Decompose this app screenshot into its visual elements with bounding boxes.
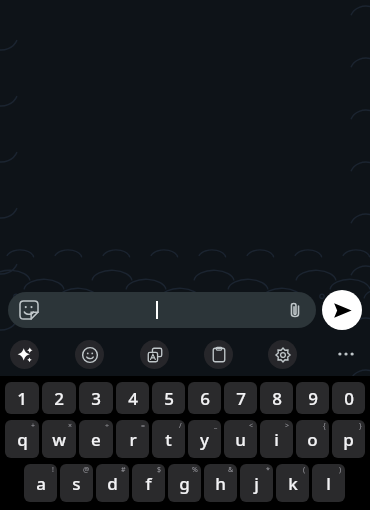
button[interactable]: d	[96, 464, 129, 502]
staticText: )	[339, 465, 342, 475]
button[interactable]: 9	[296, 382, 329, 414]
button[interactable]: 0	[332, 382, 365, 414]
staticText: 3	[91, 387, 101, 410]
staticText: e	[91, 428, 101, 451]
staticText: p	[343, 428, 354, 451]
button[interactable]: y	[188, 420, 221, 458]
staticText: g	[179, 472, 190, 495]
button[interactable]: 1	[5, 382, 39, 414]
staticText: f	[145, 472, 152, 495]
staticText: *	[266, 465, 270, 475]
button[interactable]: Stickers	[8, 292, 316, 328]
button[interactable]: More options	[332, 340, 360, 368]
staticText: o	[307, 428, 318, 451]
staticText: t	[165, 428, 172, 451]
staticText: (	[303, 465, 306, 475]
button[interactable]: Emoji	[75, 340, 104, 369]
button[interactable]: o	[296, 420, 329, 458]
button[interactable]: t	[152, 420, 185, 458]
button[interactable]: Send	[322, 290, 362, 330]
button[interactable]: j	[240, 464, 273, 502]
button[interactable]: 4	[116, 382, 149, 414]
staticText: 1	[17, 387, 27, 410]
button[interactable]: Settings	[268, 340, 297, 369]
staticText: q	[17, 428, 28, 451]
staticText: _	[214, 421, 218, 431]
button[interactable]: Translate	[140, 340, 169, 369]
button[interactable]: a	[24, 464, 57, 502]
staticText: 6	[200, 387, 210, 410]
staticText: }	[359, 421, 362, 431]
staticText: +	[31, 421, 36, 431]
staticText: k	[288, 472, 298, 495]
staticText: i	[274, 428, 279, 451]
button[interactable]: i	[260, 420, 293, 458]
button[interactable]: k	[276, 464, 309, 502]
staticText: h	[215, 472, 226, 495]
staticText: y	[200, 428, 209, 451]
staticText: =	[141, 421, 146, 431]
staticText: ×	[68, 421, 73, 431]
staticText: $	[157, 465, 162, 475]
staticText: r	[129, 428, 137, 451]
staticText: ÷	[105, 421, 110, 431]
staticText: <	[249, 421, 254, 431]
button[interactable]: s	[60, 464, 93, 502]
staticText: s	[72, 472, 81, 495]
button[interactable]: Attach	[283, 298, 307, 322]
button[interactable]: r	[116, 420, 149, 458]
staticText: &	[228, 465, 234, 475]
button[interactable]: w	[42, 420, 76, 458]
button[interactable]: 2	[42, 382, 76, 414]
button[interactable]: 7	[224, 382, 257, 414]
button[interactable]: e	[79, 420, 113, 458]
staticText: 4	[128, 387, 138, 410]
staticText: 7	[236, 387, 246, 410]
staticText: >	[285, 421, 290, 431]
button[interactable]: AI suggestions	[10, 340, 39, 369]
button[interactable]: f	[132, 464, 165, 502]
staticText: l	[326, 472, 331, 495]
button[interactable]: q	[5, 420, 39, 458]
staticText: @	[83, 465, 90, 475]
staticText: a	[36, 472, 46, 495]
staticText: /	[179, 421, 182, 431]
staticText: 5	[164, 387, 174, 410]
staticText: 2	[54, 387, 64, 410]
staticText: w	[52, 428, 66, 451]
button[interactable]: 5	[152, 382, 185, 414]
staticText: !	[52, 465, 54, 475]
button[interactable]: Clipboard	[204, 340, 233, 369]
staticText: #	[121, 465, 126, 475]
staticText: j	[254, 472, 259, 495]
button[interactable]: h	[204, 464, 237, 502]
staticText: u	[235, 428, 246, 451]
staticText: 8	[272, 387, 282, 410]
staticText: 0	[344, 387, 354, 410]
button[interactable]: u	[224, 420, 257, 458]
button[interactable]: 6	[188, 382, 221, 414]
button[interactable]: l	[312, 464, 345, 502]
staticText: %	[192, 465, 198, 475]
button[interactable]: 3	[79, 382, 113, 414]
button[interactable]: 8	[260, 382, 293, 414]
button[interactable]: p	[332, 420, 365, 458]
staticText: {	[323, 421, 326, 431]
staticText: 9	[308, 387, 318, 410]
button[interactable]: Stickers	[16, 297, 42, 323]
staticText: d	[107, 472, 118, 495]
button[interactable]: g	[168, 464, 201, 502]
